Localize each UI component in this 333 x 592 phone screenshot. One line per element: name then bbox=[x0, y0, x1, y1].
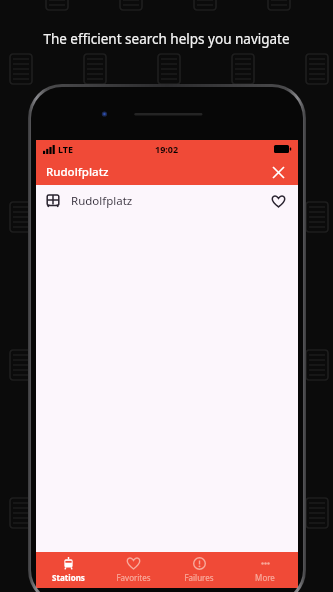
staticText: 19:02 bbox=[155, 143, 179, 155]
button[interactable]: Add to favorites bbox=[268, 191, 288, 211]
staticText: The efficient search helps you navigate bbox=[0, 30, 333, 48]
staticText: Rudolfplatz bbox=[46, 164, 268, 180]
button[interactable]: Clear search bbox=[268, 162, 288, 182]
staticText: Favorites bbox=[116, 572, 151, 583]
staticText: LTE bbox=[58, 143, 74, 155]
button[interactable]: Favorites bbox=[101, 552, 166, 588]
staticText: Rudolfplatz bbox=[71, 193, 268, 209]
button[interactable]: Rudolfplatz bbox=[36, 158, 298, 185]
button[interactable]: Rudolfplatz bbox=[36, 185, 298, 217]
button[interactable]: More bbox=[232, 552, 298, 588]
button[interactable]: Failures bbox=[166, 552, 232, 588]
staticText: More bbox=[255, 572, 275, 583]
staticText: Failures bbox=[184, 572, 214, 583]
staticText: Stations bbox=[52, 572, 85, 583]
button[interactable]: Stations bbox=[36, 552, 101, 588]
